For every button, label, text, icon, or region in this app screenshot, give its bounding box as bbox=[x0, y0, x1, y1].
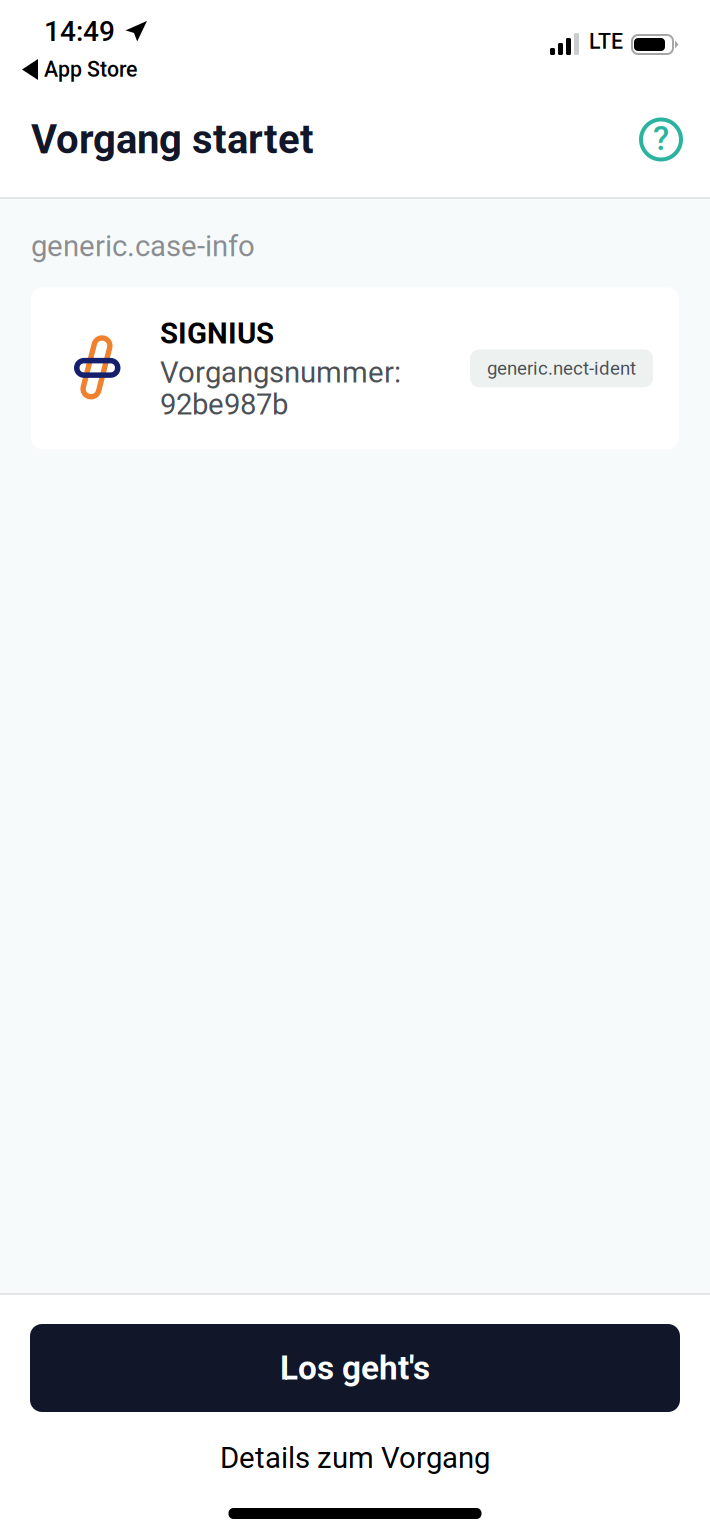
staticText: Details zum Vorgang bbox=[220, 1441, 490, 1475]
staticText: Los geht's bbox=[280, 1348, 430, 1388]
staticText: generic.case-info bbox=[31, 229, 255, 263]
button[interactable]: Hilfe bbox=[634, 112, 688, 166]
staticText: Vorgang startet bbox=[31, 116, 314, 163]
staticText: App Store bbox=[44, 57, 137, 82]
staticText: LTE bbox=[589, 29, 623, 54]
button[interactable]: Los geht's bbox=[30, 1324, 680, 1412]
staticText: SIGNIUS bbox=[160, 316, 274, 351]
staticText: generic.nect-ident bbox=[487, 357, 636, 379]
staticText: 14:49 bbox=[44, 15, 115, 48]
staticText: Vorgangsnummer: bbox=[160, 355, 401, 390]
staticText: 92be987b bbox=[160, 387, 288, 422]
button[interactable]: Details zum Vorgang bbox=[0, 1436, 710, 1480]
staticText: ? bbox=[653, 119, 669, 158]
